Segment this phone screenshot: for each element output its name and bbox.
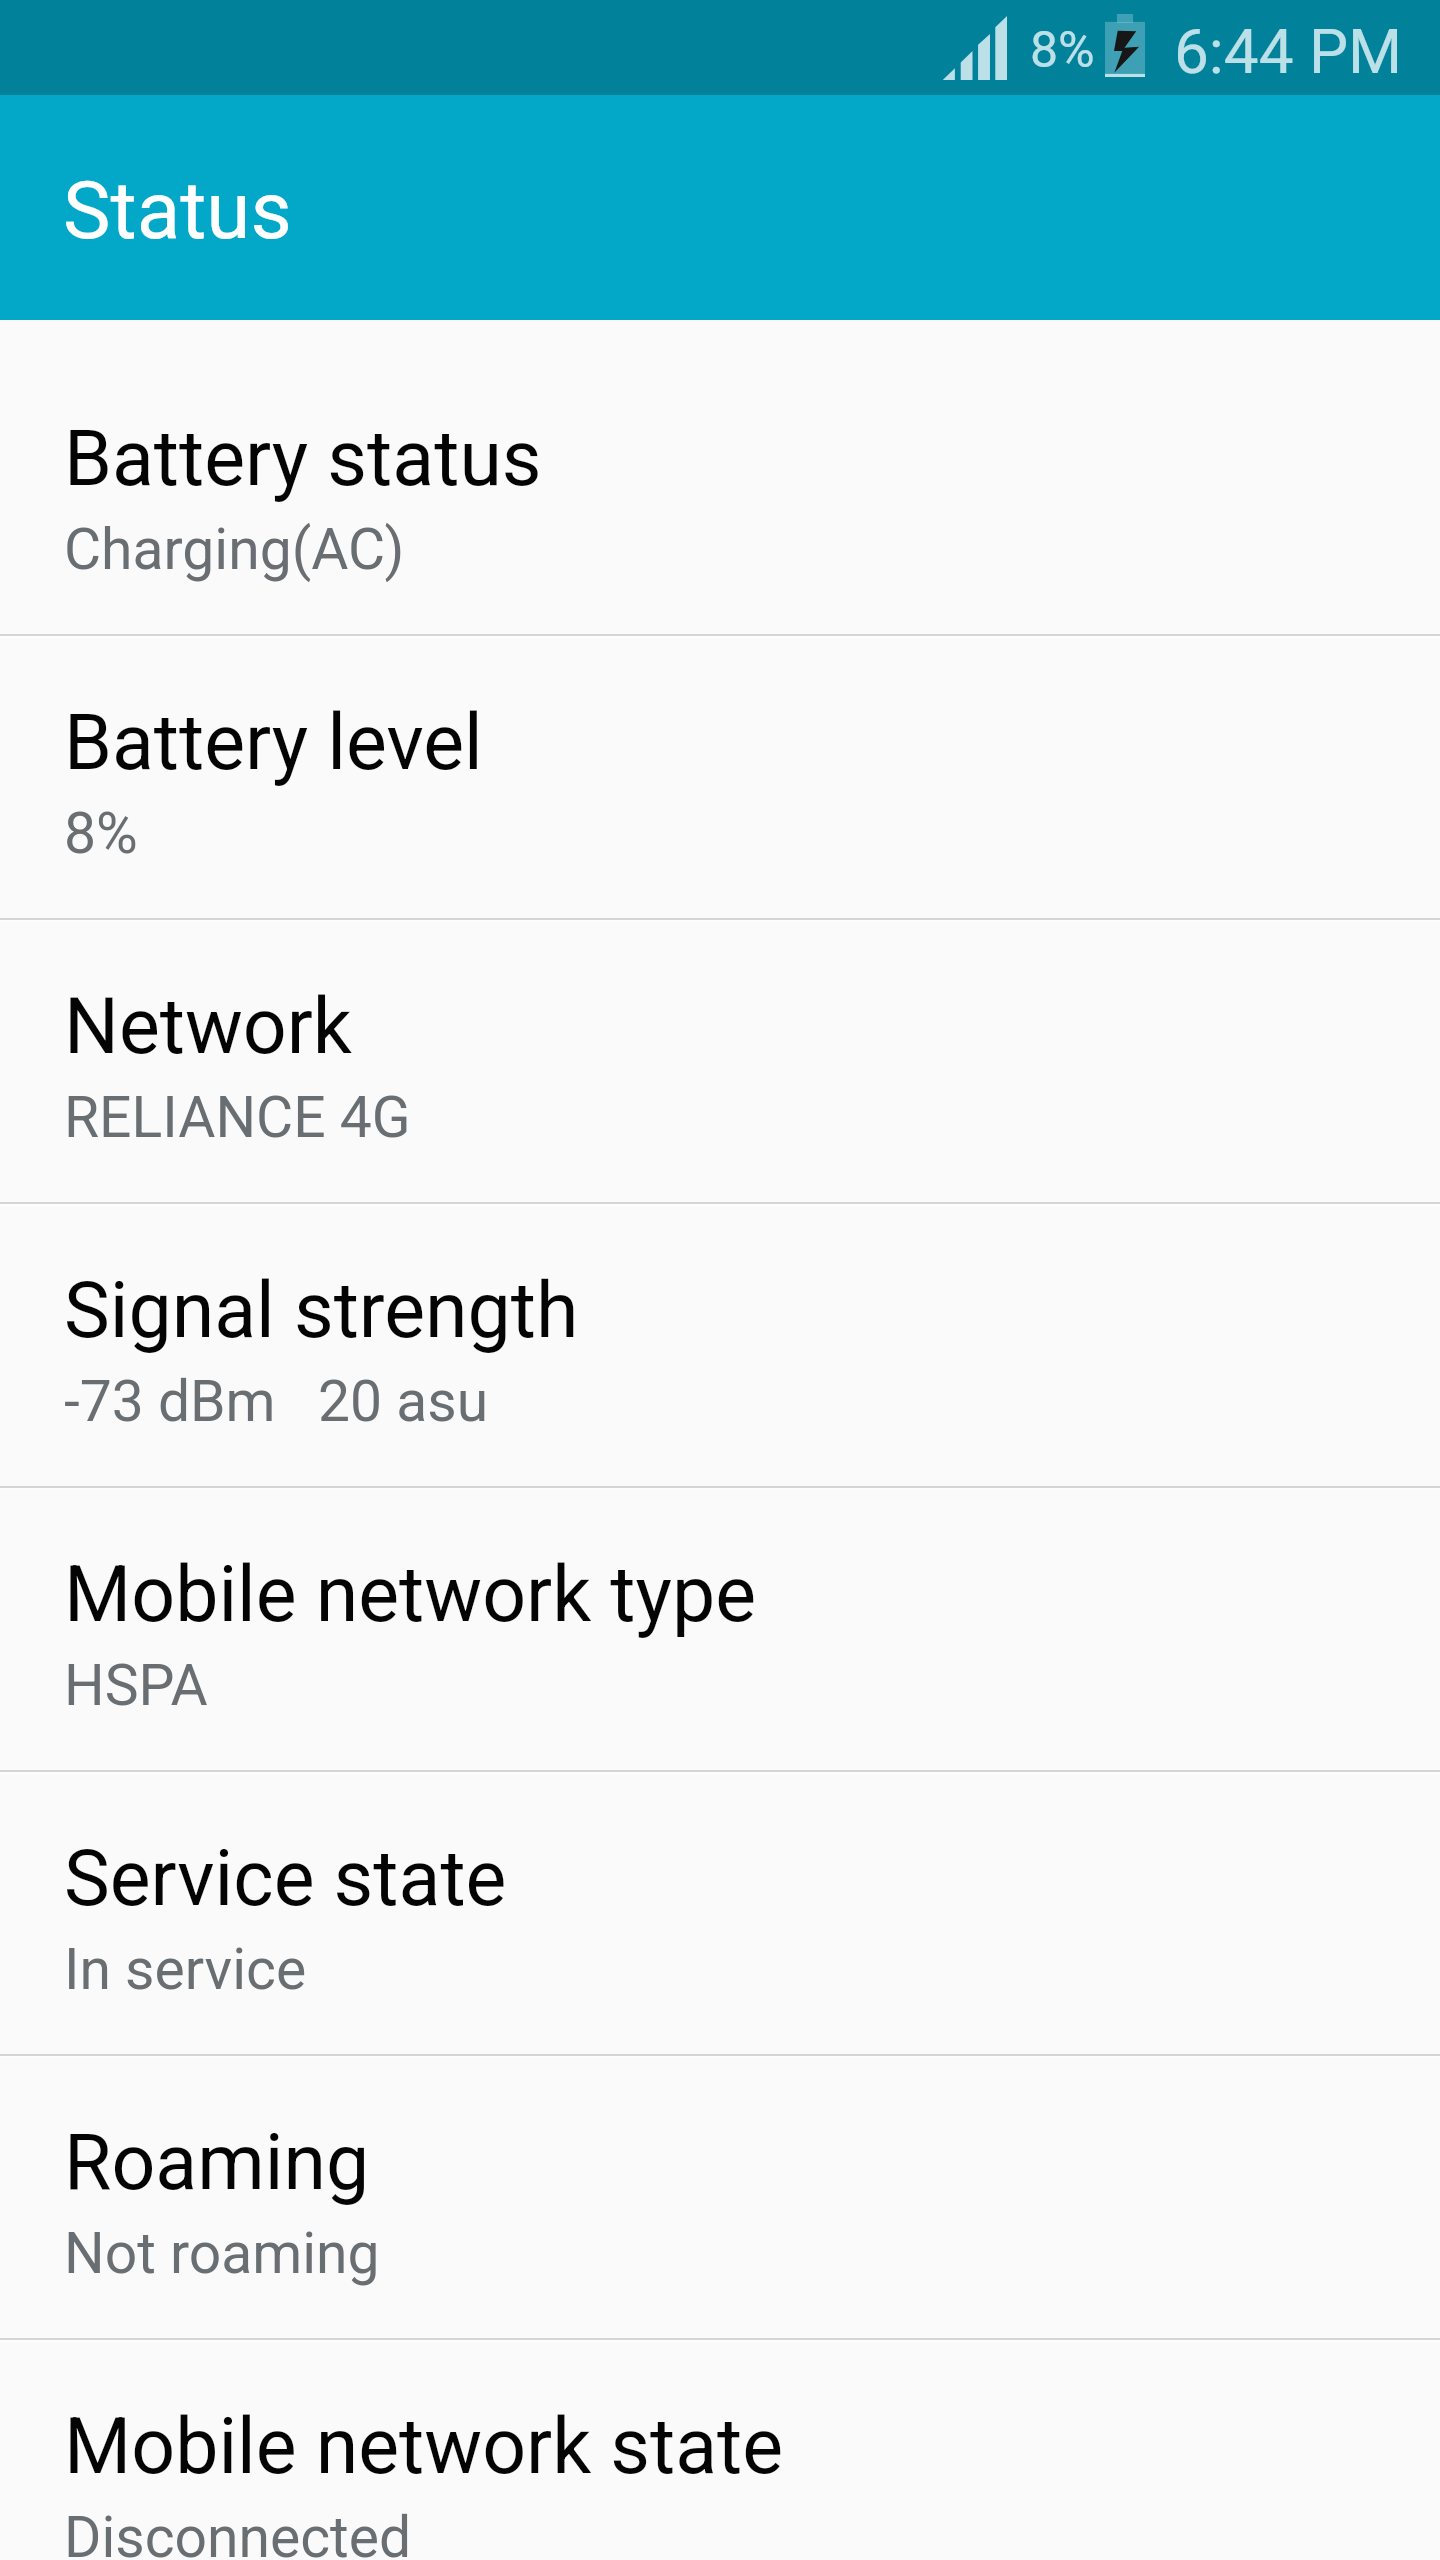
staticText: Roaming [64,2118,370,2208]
button[interactable]: Network [0,920,1440,1204]
button[interactable]: Mobile network type [0,1488,1440,1772]
staticText: Battery status [64,414,542,504]
staticText: Battery level [64,698,483,788]
staticText: -73 dBm 20 asu [64,1368,489,1435]
staticText: 6:44 PM [1174,15,1403,88]
staticText: Network [64,982,352,1072]
staticText: Signal strength [64,1266,579,1356]
button[interactable]: Battery level [0,636,1440,920]
button[interactable]: Service state [0,1772,1440,2056]
button[interactable]: Mobile network state [0,2340,1440,2560]
staticText: Mobile network state [64,2402,784,2492]
staticText: Disconnected [64,2504,412,2560]
staticText: Charging(AC) [64,516,405,583]
staticText: In service [64,1936,307,2003]
staticText: Mobile network type [64,1550,756,1640]
staticText: Status [63,164,292,258]
button[interactable]: Battery status [0,352,1440,636]
button[interactable]: Signal strength [0,1204,1440,1488]
staticText: 8% [64,800,138,867]
staticText: Service state [64,1834,507,1924]
staticText: Not roaming [64,2220,380,2287]
button[interactable]: Roaming [0,2056,1440,2340]
staticText: 8% [1030,21,1095,80]
staticText: HSPA [64,1652,208,1719]
other: Battery charging, 8 percent [1105,14,1145,77]
other: Mobile signal strength, 4 bars [943,16,1007,80]
staticText: RELIANCE 4G [64,1084,411,1151]
